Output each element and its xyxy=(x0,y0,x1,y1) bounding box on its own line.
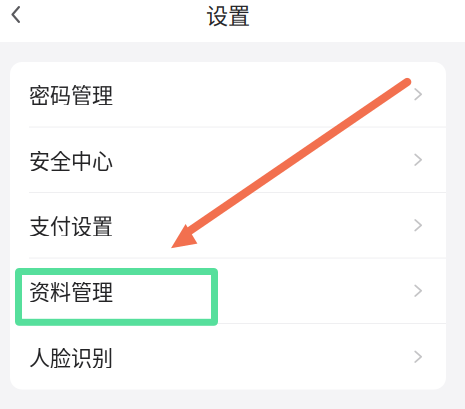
staticText: 设置 xyxy=(206,0,250,30)
button[interactable]: 密码管理 xyxy=(10,62,446,127)
button[interactable]: 人脸识别 xyxy=(10,324,446,389)
staticText: 人脸识别 xyxy=(29,341,113,372)
button[interactable]: 支付设置 xyxy=(10,193,446,258)
staticText: 密码管理 xyxy=(29,79,113,109)
staticText: 安全中心 xyxy=(29,144,113,175)
staticText: 资料管理 xyxy=(29,275,113,306)
button[interactable]: 安全中心 xyxy=(10,127,446,193)
button[interactable]: 资料管理 xyxy=(10,258,446,324)
button[interactable]: Back xyxy=(0,0,34,31)
staticText: 支付设置 xyxy=(29,210,113,240)
